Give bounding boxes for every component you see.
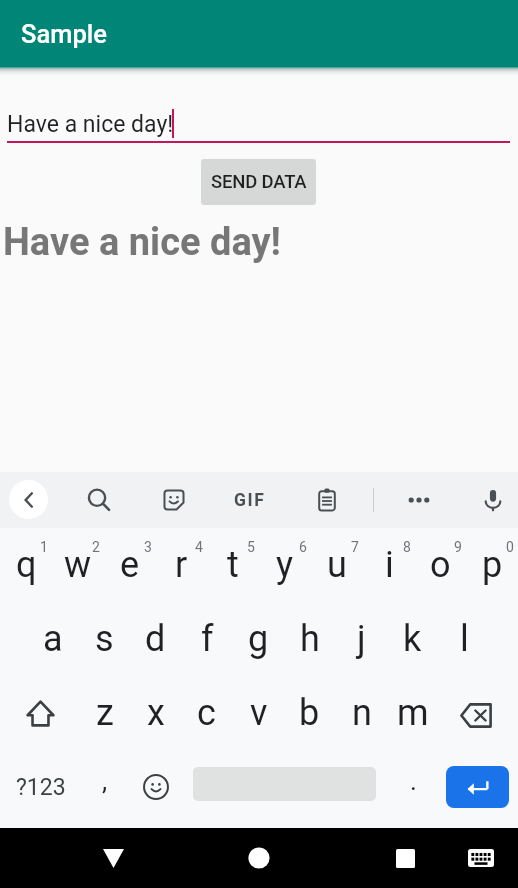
- staticText: 7: [351, 539, 359, 555]
- button[interactable]: Recent apps: [377, 829, 433, 887]
- button[interactable]: Keyboard: [453, 829, 509, 887]
- button[interactable]: b: [284, 676, 335, 750]
- button[interactable]: Back: [9, 480, 48, 519]
- staticText: d: [145, 618, 166, 660]
- other: Search: [85, 486, 113, 514]
- staticText: f: [201, 618, 214, 660]
- staticText: 3: [144, 539, 152, 555]
- staticText: r: [175, 544, 188, 586]
- button[interactable]: o: [414, 528, 466, 602]
- button[interactable]: Sample: [0, 0, 518, 67]
- button[interactable]: s: [79, 602, 130, 676]
- button[interactable]: .: [388, 750, 438, 824]
- button[interactable]: Search: [77, 478, 121, 522]
- staticText: .: [410, 766, 417, 796]
- button[interactable]: t: [207, 528, 259, 602]
- staticText: b: [299, 692, 320, 734]
- button[interactable]: u: [311, 528, 363, 602]
- staticText: s: [95, 618, 114, 660]
- button[interactable]: Enter: [446, 766, 509, 808]
- staticText: h: [300, 618, 320, 660]
- button[interactable]: Emoji: [131, 750, 181, 824]
- button[interactable]: v: [233, 676, 284, 750]
- staticText: t: [227, 544, 239, 586]
- staticText: ?123: [16, 774, 66, 801]
- staticText: v: [250, 692, 268, 734]
- staticText: o: [430, 544, 451, 586]
- other: Clipboard: [314, 487, 340, 513]
- staticText: x: [147, 692, 165, 734]
- staticText: Sample: [21, 19, 107, 49]
- button[interactable]: p: [466, 528, 518, 602]
- button[interactable]: k: [387, 602, 438, 676]
- button[interactable]: c: [181, 676, 232, 750]
- button[interactable]: m: [387, 676, 438, 750]
- other: Stickers: [160, 486, 188, 514]
- staticText: m: [397, 692, 429, 734]
- button[interactable]: l: [439, 602, 490, 676]
- staticText: c: [197, 692, 216, 734]
- button[interactable]: f: [182, 602, 233, 676]
- staticText: n: [352, 692, 372, 734]
- button[interactable]: Backspace: [450, 678, 502, 752]
- staticText: 4: [195, 539, 203, 555]
- button[interactable]: ?123: [5, 750, 77, 824]
- staticText: j: [357, 618, 366, 660]
- staticText: Have a nice day!: [7, 111, 174, 138]
- other: Voice input: [479, 486, 507, 514]
- button[interactable]: Clipboard: [305, 478, 349, 522]
- staticText: u: [327, 544, 347, 586]
- staticText: ,: [102, 766, 108, 796]
- button[interactable]: SEND DATA: [201, 159, 316, 205]
- staticText: 8: [403, 539, 411, 555]
- staticText: y: [276, 544, 294, 586]
- staticText: i: [385, 544, 394, 586]
- staticText: q: [16, 544, 37, 586]
- button[interactable]: d: [130, 602, 181, 676]
- button[interactable]: i: [363, 528, 415, 602]
- staticText: 6: [299, 539, 307, 555]
- button[interactable]: a: [27, 602, 78, 676]
- staticText: 1: [40, 539, 48, 555]
- staticText: SEND DATA: [211, 171, 307, 193]
- other: Back: [17, 488, 41, 512]
- button[interactable]: w: [52, 528, 104, 602]
- staticText: Have a nice day!: [3, 220, 281, 265]
- button[interactable]: g: [233, 602, 284, 676]
- button[interactable]: j: [336, 602, 387, 676]
- button[interactable]: h: [284, 602, 335, 676]
- staticText: k: [403, 618, 422, 660]
- staticText: z: [96, 692, 114, 734]
- staticText: 2: [92, 539, 100, 555]
- staticText: w: [64, 544, 92, 586]
- button[interactable]: Stickers: [152, 478, 196, 522]
- staticText: g: [248, 618, 269, 660]
- button[interactable]: Voice input: [471, 478, 515, 522]
- button[interactable]: More options: [397, 478, 441, 522]
- staticText: 5: [247, 539, 255, 555]
- button[interactable]: q: [0, 528, 52, 602]
- staticText: p: [482, 544, 503, 586]
- other: More options: [406, 487, 432, 513]
- button[interactable]: y: [259, 528, 311, 602]
- staticText: l: [460, 618, 469, 660]
- button[interactable]: Home: [231, 829, 287, 887]
- button[interactable]: Shift: [14, 676, 66, 750]
- button[interactable]: Back: [85, 829, 141, 887]
- button[interactable]: e: [104, 528, 156, 602]
- staticText: e: [120, 544, 140, 586]
- staticText: a: [43, 618, 63, 660]
- button[interactable]: ,: [80, 750, 130, 824]
- staticText: 0: [506, 539, 514, 555]
- button[interactable]: x: [130, 676, 181, 750]
- button[interactable]: z: [79, 676, 130, 750]
- button[interactable]: r: [155, 528, 207, 602]
- staticText: GIF: [234, 490, 266, 511]
- staticText: 9: [454, 539, 462, 555]
- button[interactable]: n: [336, 676, 387, 750]
- button[interactable]: GIF: [228, 478, 272, 522]
